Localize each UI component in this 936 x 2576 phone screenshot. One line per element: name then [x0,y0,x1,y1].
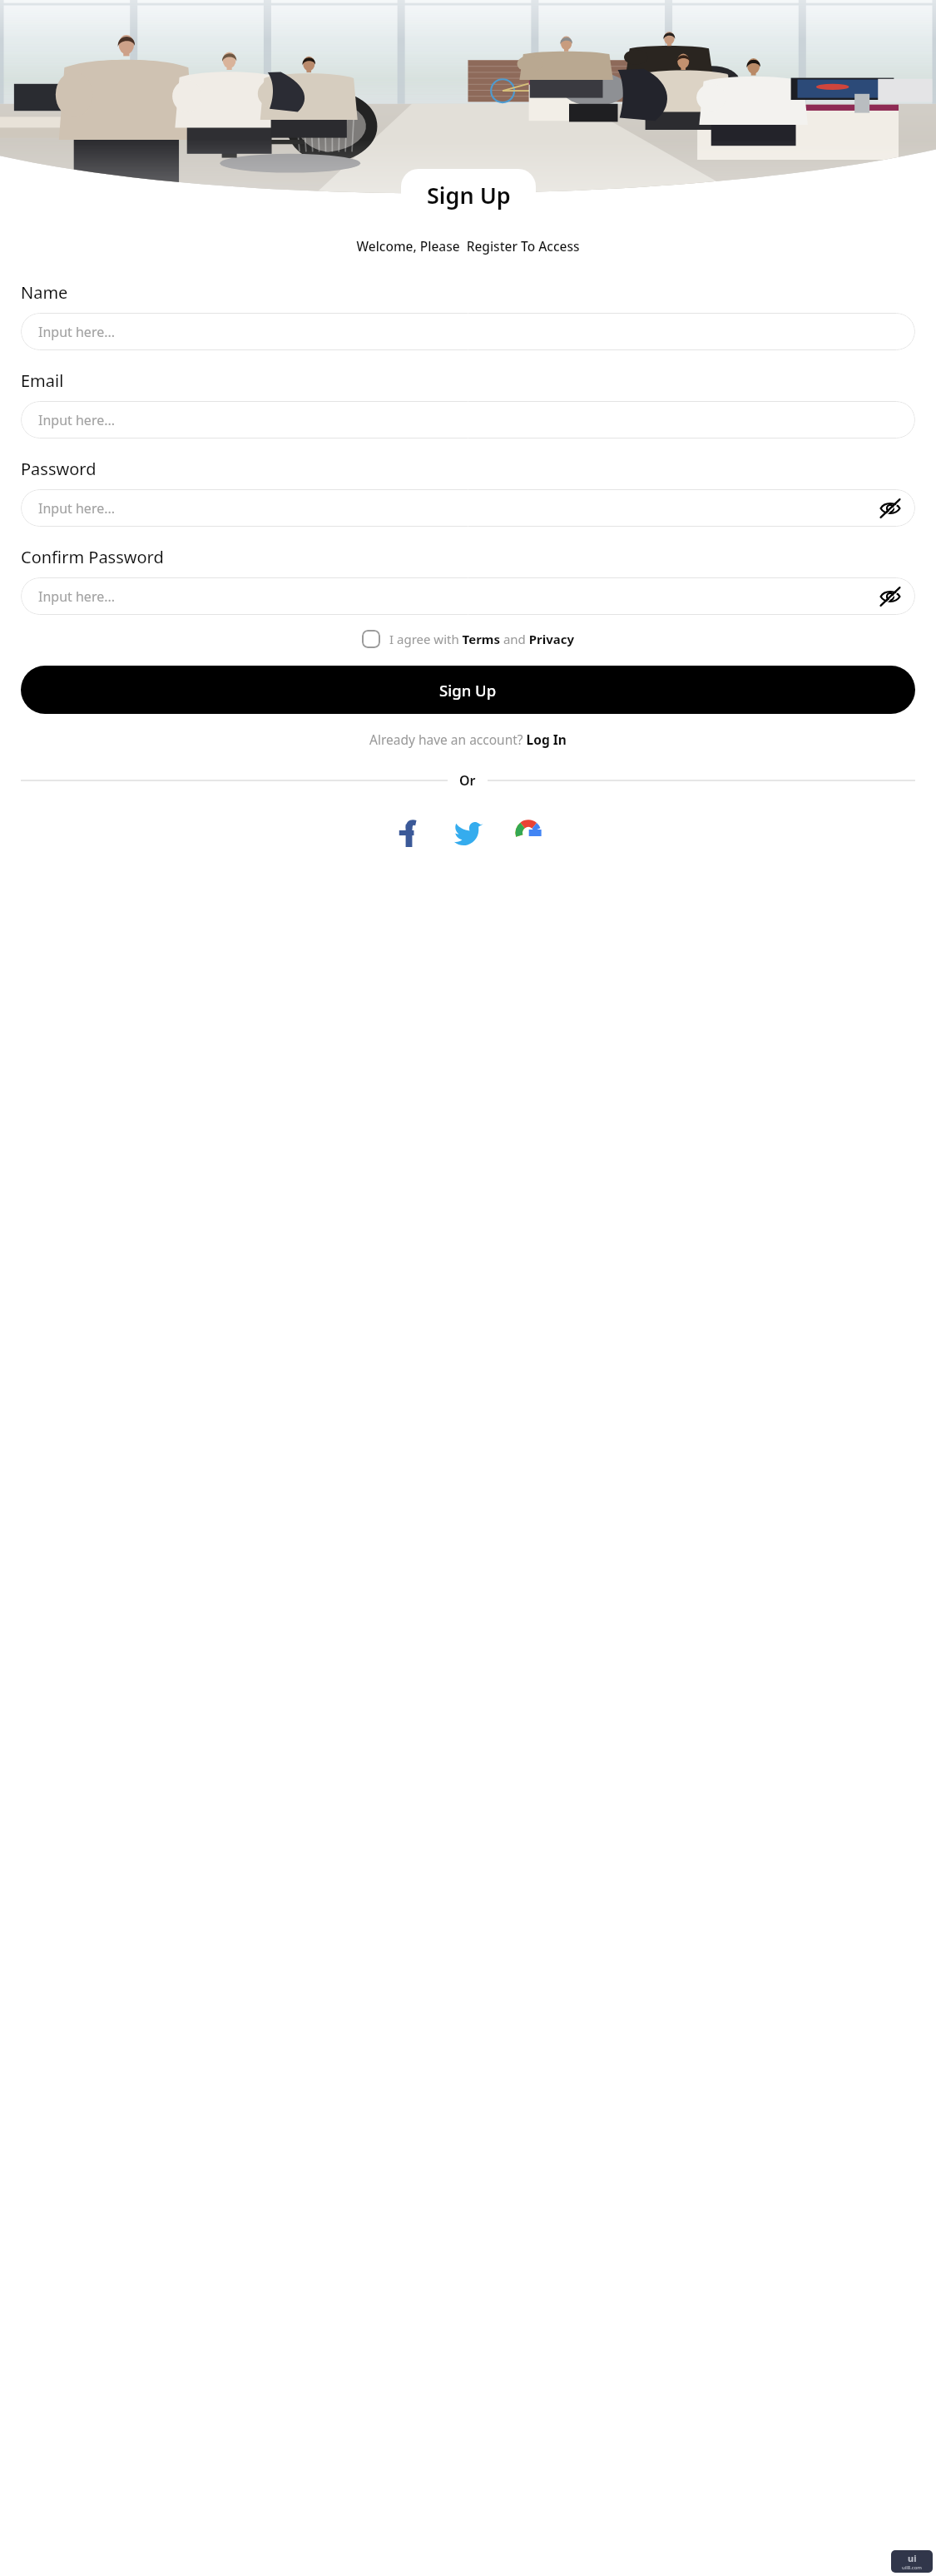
staticText: Welcome, Please Register To Access [0,237,936,255]
button[interactable]: Sign up with Twitter [447,811,490,855]
staticText: Name [21,281,68,304]
staticText: Input here... [38,411,116,429]
button[interactable]: Sign up with Facebook [387,811,430,855]
staticText: Email [21,369,64,392]
staticText: Sign Up [439,680,497,701]
button[interactable]: I agree with Terms and Privacy [21,630,915,648]
button[interactable]: Input here... [21,401,915,438]
staticText: Confirm Password [21,546,164,568]
button[interactable]: Sign Up [401,169,536,220]
button[interactable]: Sign up with Google [507,811,550,855]
staticText: I agree with Terms and Privacy [389,631,575,647]
staticText: Already have an account? Log In [369,731,567,748]
button[interactable]: Already have an account? Log In [21,731,915,748]
button[interactable]: Show password [877,583,904,610]
staticText: Or [459,771,476,790]
button[interactable]: Show password [877,495,904,522]
staticText: Input here... [38,499,116,518]
button[interactable]: Input here... [21,489,915,527]
staticText: Sign Up [427,180,511,211]
button[interactable]: Sign Up [21,666,915,714]
staticText: Password [21,458,97,480]
button[interactable]: Input here... [21,577,915,615]
staticText: Input here... [38,587,116,606]
staticText: ui [908,2552,917,2564]
staticText: Input here... [38,323,116,341]
staticText: uil8.com [902,2564,922,2571]
button[interactable]: Input here... [21,313,915,350]
